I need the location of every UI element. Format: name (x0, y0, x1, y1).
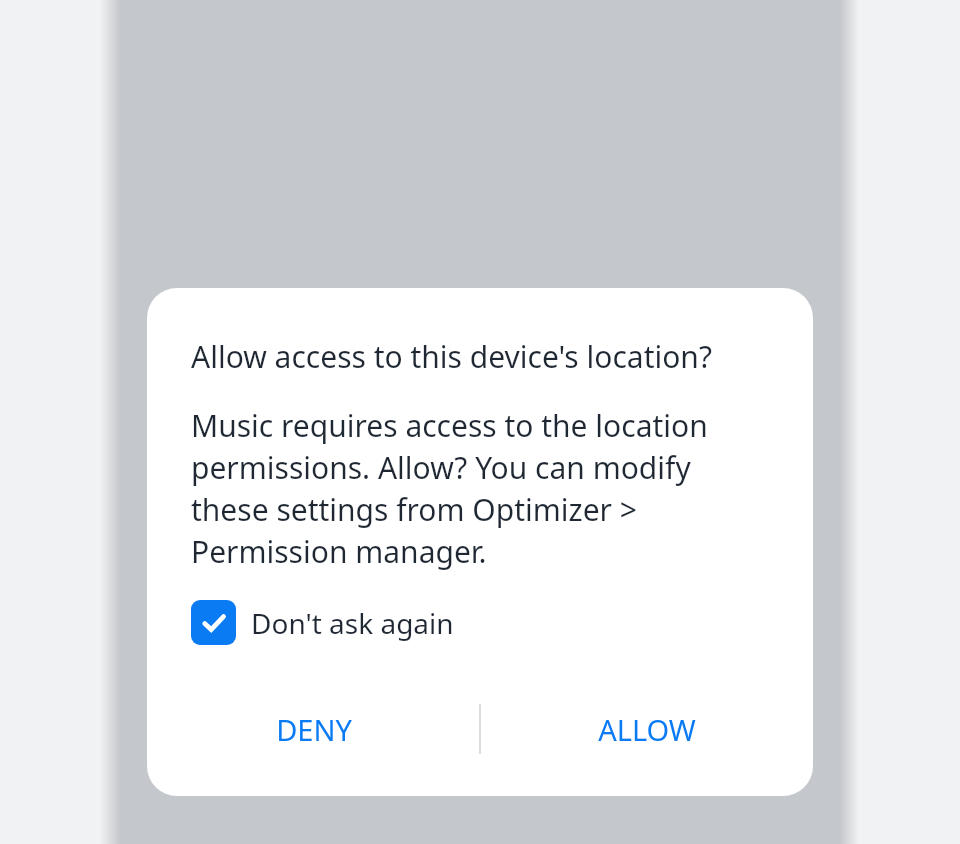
staticText: DENY (276, 710, 352, 749)
staticText: Don't ask again (251, 604, 454, 642)
staticText: Music requires access to the location pe… (191, 405, 769, 572)
button[interactable]: ALLOW (480, 689, 813, 769)
button[interactable]: DENY (147, 689, 480, 769)
staticText: ALLOW (598, 710, 696, 749)
staticText: Allow access to this device's location? (191, 336, 712, 377)
other: Don't ask again checkbox (191, 600, 236, 645)
button[interactable]: Don't ask again checkbox (191, 600, 454, 645)
